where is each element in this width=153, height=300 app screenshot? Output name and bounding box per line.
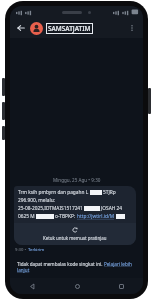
button[interactable]: Back [14, 21, 28, 35]
staticText: 25-08-2025,IDTMAIS1517241 [18, 205, 83, 212]
staticText: JOSAH 24 [101, 205, 123, 212]
button[interactable]: Contact avatar [30, 22, 43, 35]
staticText: Tidak dapat membalas kode singkat ini. [17, 261, 104, 267]
staticText: o-TBPKP: [55, 213, 77, 220]
staticText: http://jwtirl.id/M [77, 213, 115, 220]
staticText: Pelajari lebih [104, 261, 132, 267]
button[interactable]: Pelajari lebih [104, 261, 132, 267]
button[interactable]: Reload preview [14, 223, 136, 245]
staticText: 0625 M [18, 213, 35, 220]
button[interactable]: lanjut [17, 267, 30, 273]
button[interactable]: More options [125, 21, 139, 35]
staticText: SAMSATJATIM [48, 24, 91, 33]
staticText: 5TJRp [103, 189, 116, 196]
staticText: 9:30 • [15, 247, 28, 253]
staticText: lanjut [17, 267, 30, 273]
button[interactable]: Recent apps [99, 278, 143, 294]
staticText: Terkirim [28, 247, 45, 253]
button[interactable]: Home [55, 278, 99, 294]
staticText: Ketuk untuk memuat pratinjau [43, 235, 107, 241]
button[interactable]: Back [10, 278, 55, 294]
staticText: Trm ksih pmbyrn dan pagahn L [18, 189, 89, 196]
button[interactable]: Trm ksih pmbyrn dan pagahn L [14, 186, 136, 245]
staticText: 296.900, melalu: [18, 197, 55, 204]
other: Reload preview [72, 227, 78, 233]
button[interactable]: SAMSATJATIM [46, 23, 93, 34]
staticText: Minggu, 25 Agu • 9:30 [53, 177, 101, 183]
